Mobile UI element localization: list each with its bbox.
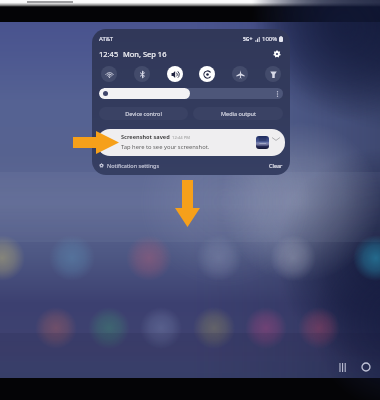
button[interactable]: Airplane mode — [232, 66, 248, 82]
staticText: Tap here to see your screenshot. — [121, 143, 210, 151]
staticText: Media output — [221, 110, 256, 117]
staticText: Mon, Sep 16 — [123, 49, 167, 59]
staticText: Screenshot saved — [121, 133, 170, 141]
staticText: Clear — [269, 162, 283, 169]
button[interactable]: Notification settings — [99, 162, 160, 169]
staticText: Notification settings — [107, 162, 160, 169]
button[interactable]: Screenshot saved — [97, 129, 285, 156]
button[interactable]: Sound — [167, 66, 183, 82]
staticText: AT&T — [99, 35, 113, 43]
button[interactable]: Expand notification — [271, 134, 281, 144]
staticText: 100% — [262, 35, 278, 43]
button[interactable]: Home — [354, 356, 378, 378]
button[interactable]: Flashlight — [265, 66, 281, 82]
button[interactable]: Bluetooth — [134, 66, 150, 82]
staticText: Device control — [125, 110, 162, 117]
button[interactable]: Settings — [271, 48, 283, 60]
button[interactable]: Recents — [330, 356, 354, 378]
staticText: 12:45 — [99, 49, 119, 59]
staticText: 12:44 PM — [172, 135, 191, 141]
button[interactable]: Device control — [99, 107, 188, 120]
button[interactable]: Wi-Fi — [101, 66, 117, 82]
button[interactable]: Auto rotate — [199, 66, 215, 82]
button[interactable]: Media output — [193, 107, 283, 120]
button[interactable]: Brightness — [99, 88, 283, 99]
button[interactable]: Clear — [269, 162, 283, 169]
staticText: 5G+ — [243, 36, 253, 43]
